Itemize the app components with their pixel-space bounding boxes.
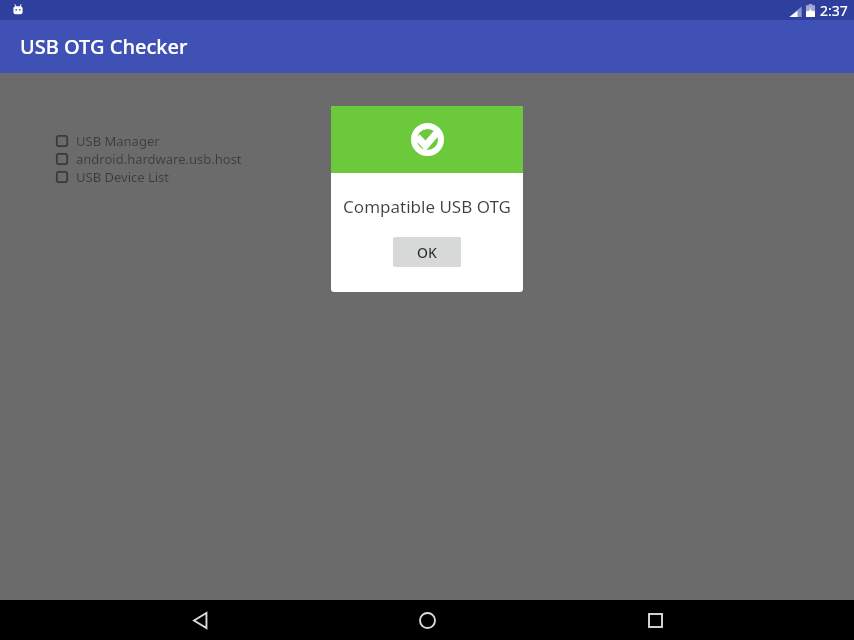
staticText: android.hardware.usb.host <box>76 150 242 168</box>
staticText: USB OTG Checker <box>20 33 188 60</box>
button[interactable]: Home <box>399 600 455 640</box>
button[interactable]: OK <box>393 237 461 267</box>
staticText: OK <box>417 243 437 262</box>
button[interactable]: Back <box>172 600 228 640</box>
staticText: USB Manager <box>76 132 160 150</box>
button[interactable]: USB Device List <box>56 168 170 186</box>
button[interactable]: android.hardware.usb.host <box>56 150 242 168</box>
staticText: 2:37 <box>820 1 848 20</box>
button[interactable]: Recents <box>627 600 683 640</box>
button[interactable]: USB Manager <box>56 132 160 150</box>
staticText: Compatible USB OTG <box>331 195 523 218</box>
staticText: USB Device List <box>76 168 170 186</box>
